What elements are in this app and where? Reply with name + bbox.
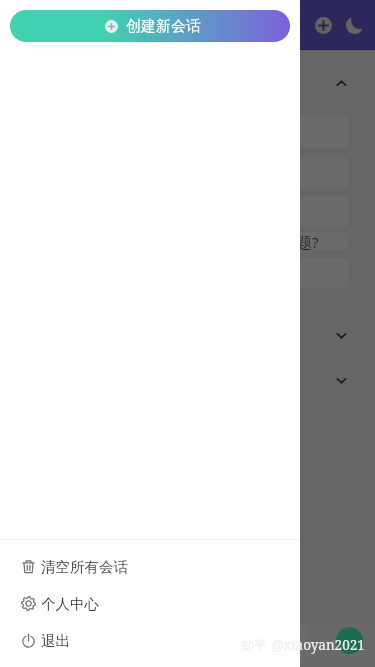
staticText: @xiaoyan2021 [271,636,365,654]
staticText: 创建新会话 [126,17,201,36]
button[interactable]: Scroll to top [330,72,352,94]
staticText: 清空所有会话 [41,558,128,576]
staticText: 题? [297,232,319,250]
button[interactable]: 创建新会话 [10,10,290,42]
button[interactable]: 清空所有会话 [0,548,300,585]
button[interactable]: Send [336,627,363,654]
staticText: 知乎 [241,637,267,653]
button[interactable]: New chat [308,10,338,40]
staticText: 个人中心 [41,595,99,613]
button[interactable]: Scroll to bottom [330,369,352,391]
staticText: 退出 [41,632,70,650]
button[interactable]: 个人中心 [0,585,300,622]
button[interactable]: Scroll down [330,324,352,346]
button[interactable]: Dark mode [339,10,369,40]
button[interactable]: 退出 [0,622,300,659]
